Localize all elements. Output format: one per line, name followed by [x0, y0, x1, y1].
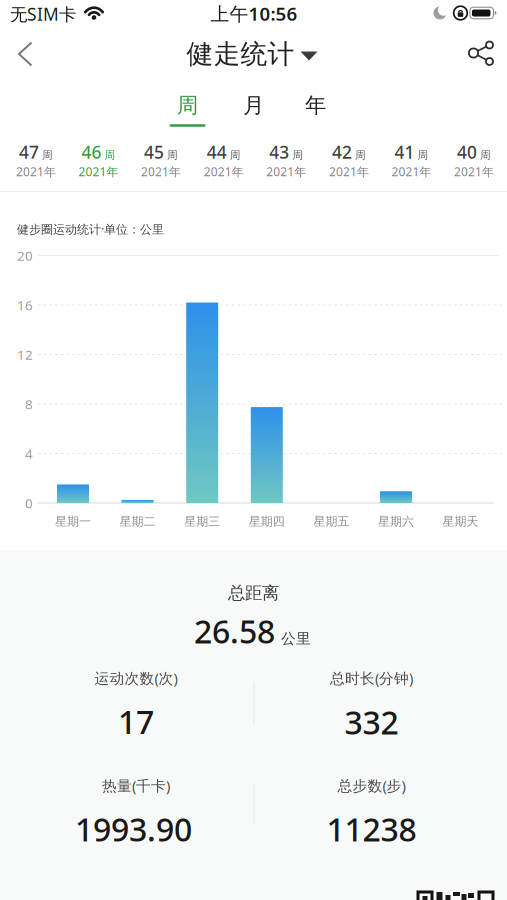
staticText: 星期六	[378, 514, 414, 529]
button[interactable]: 44	[195, 134, 253, 186]
staticText: 2021年	[266, 163, 306, 179]
staticText: 月	[243, 92, 264, 119]
staticText: 8	[25, 395, 33, 413]
staticText: 星期天	[443, 514, 479, 529]
staticText: 运动次数(次)	[94, 668, 177, 688]
staticText: 2021年	[16, 163, 56, 179]
staticText: 无SIM卡	[10, 2, 76, 25]
staticText: 公里	[281, 629, 311, 647]
staticText: 43	[269, 140, 289, 163]
staticText: 周	[292, 149, 303, 162]
staticText: 周	[230, 149, 241, 162]
staticText: 周	[355, 149, 366, 162]
staticText: 周	[105, 149, 116, 162]
staticText: 周	[167, 149, 178, 162]
staticText: 总步数(步)	[337, 776, 405, 795]
button[interactable]: 47	[7, 134, 65, 186]
staticText: 星期五	[313, 514, 349, 529]
staticText: 星期二	[120, 514, 156, 529]
button[interactable]: 年	[290, 81, 340, 129]
staticText: 周	[177, 92, 198, 119]
button[interactable]: 40	[445, 134, 503, 186]
staticText: 年	[305, 92, 326, 119]
staticText: 16	[17, 296, 33, 314]
staticText: 20	[17, 247, 33, 264]
staticText: 星期四	[249, 514, 285, 529]
staticText: 热量(千卡)	[102, 776, 170, 795]
staticText: 健走统计	[186, 38, 294, 70]
button[interactable]	[456, 31, 500, 75]
staticText: 46	[82, 140, 102, 163]
staticText: 2021年	[329, 163, 369, 179]
staticText: 12	[17, 346, 33, 363]
staticText: 2021年	[141, 163, 181, 179]
staticText: 周	[42, 149, 53, 162]
button[interactable]	[3, 32, 47, 76]
staticText: 44	[207, 140, 227, 163]
staticText: 星期三	[184, 514, 220, 529]
button[interactable]: 45	[132, 134, 190, 186]
button[interactable]: 健走统计	[186, 32, 317, 76]
button[interactable]: 周	[162, 82, 212, 130]
staticText: 2021年	[79, 163, 119, 179]
staticText: 1993.90	[75, 808, 192, 850]
staticText: 47	[19, 140, 39, 163]
staticText: 2021年	[391, 163, 431, 179]
staticText: 2021年	[204, 163, 244, 179]
staticText: 17	[118, 700, 154, 743]
staticText: 26.58	[194, 610, 275, 652]
staticText: 总距离	[228, 582, 279, 604]
staticText: 周	[417, 149, 428, 162]
staticText: 周	[480, 149, 491, 162]
staticText: 上午10:56	[210, 1, 297, 26]
button[interactable]: 42	[320, 134, 378, 186]
button[interactable]: 41	[382, 134, 440, 186]
staticText: 0	[25, 494, 33, 512]
staticText: 42	[332, 140, 352, 163]
staticText: 2021年	[454, 163, 494, 179]
staticText: 45	[144, 140, 164, 163]
button[interactable]: 46	[70, 134, 128, 186]
staticText: 41	[394, 140, 414, 163]
staticText: 星期一	[55, 514, 91, 529]
staticText: 11238	[326, 808, 416, 850]
button[interactable]: 月	[228, 81, 278, 129]
staticText: 332	[344, 701, 398, 743]
staticText: 40	[457, 140, 477, 163]
staticText: 健步圈运动统计·单位：公里	[17, 221, 164, 237]
staticText: 总时长(分钟)	[330, 668, 413, 688]
staticText: 4	[25, 445, 33, 462]
button[interactable]: 43	[257, 134, 315, 186]
